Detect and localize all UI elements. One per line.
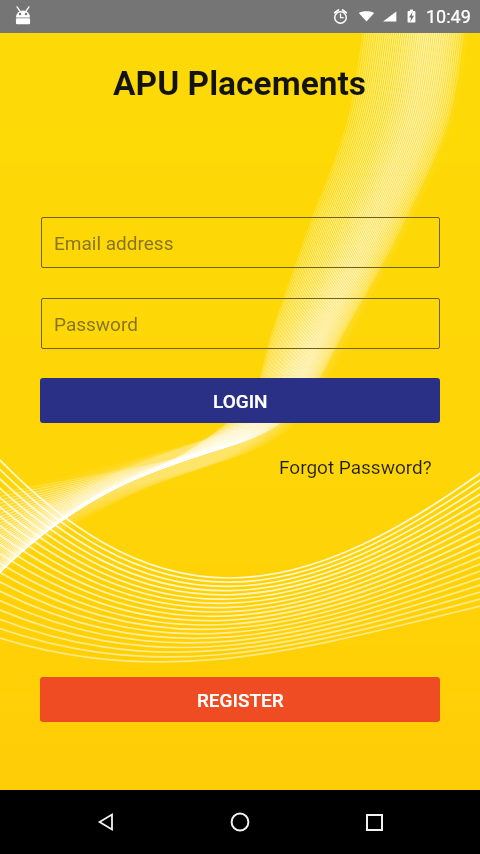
staticText: LOGIN [213,390,268,412]
button[interactable]: LOGIN [40,378,440,423]
staticText: REGISTER [197,689,284,711]
other: Android notification [12,6,34,28]
button[interactable]: Forgot Password? [275,452,436,482]
staticText: Password [54,313,138,335]
button[interactable]: Recent apps [346,794,402,850]
button[interactable]: Home [212,794,268,850]
staticText: Email address [54,232,174,254]
button[interactable]: Password [41,298,440,349]
button[interactable]: Back [78,794,134,850]
button[interactable]: REGISTER [40,677,440,722]
button[interactable]: Email address [41,217,440,268]
staticText: 10:49 [426,6,471,27]
staticText: APU Placements [113,64,367,103]
